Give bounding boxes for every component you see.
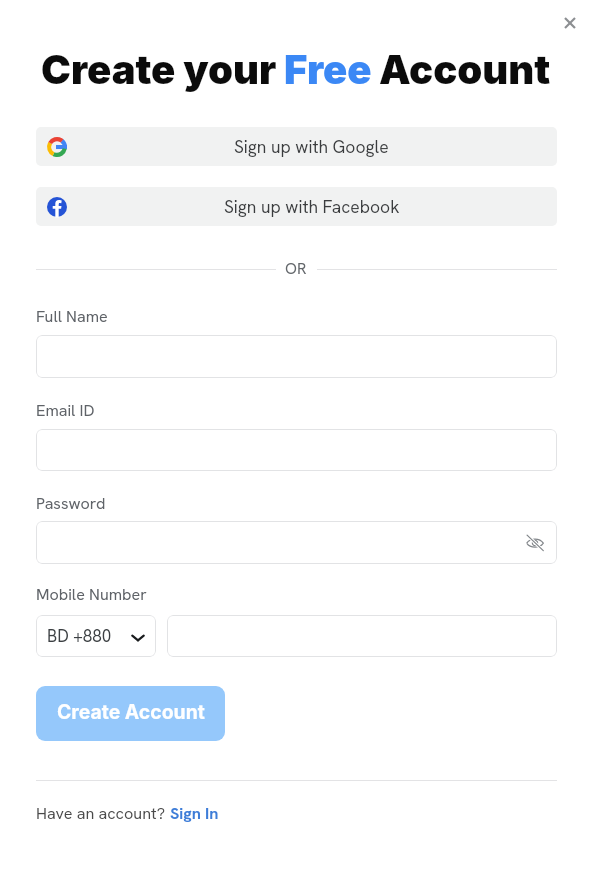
staticText: Sign up with Facebook xyxy=(224,195,400,218)
staticText: Sign up with Google xyxy=(234,135,389,158)
button[interactable]: Country code BD +880 xyxy=(36,615,156,657)
button[interactable]: Text field xyxy=(36,521,557,564)
button[interactable]: Mobile number xyxy=(167,615,557,657)
button[interactable]: Text field xyxy=(36,335,557,378)
staticText: Have an account? xyxy=(36,803,170,824)
staticText: BD +880 xyxy=(47,625,112,647)
staticText: Create Account xyxy=(57,700,205,723)
button[interactable]: Close xyxy=(558,11,582,35)
staticText: OR xyxy=(285,258,307,279)
staticText: Email ID xyxy=(36,400,95,421)
staticText: Free xyxy=(284,45,372,93)
staticText: Account xyxy=(379,45,551,93)
staticText: Create your xyxy=(41,45,277,93)
button[interactable]: Sign up with Facebook xyxy=(36,187,557,226)
button[interactable]: Text field xyxy=(36,429,557,471)
button[interactable]: Sign up with Google xyxy=(36,127,557,166)
staticText: Sign In xyxy=(170,803,219,824)
staticText: Mobile Number xyxy=(36,584,147,605)
button[interactable]: Sign In xyxy=(170,803,219,824)
button[interactable]: Create Account xyxy=(36,686,225,741)
staticText: Full Name xyxy=(36,306,108,327)
staticText: Password xyxy=(36,493,106,514)
